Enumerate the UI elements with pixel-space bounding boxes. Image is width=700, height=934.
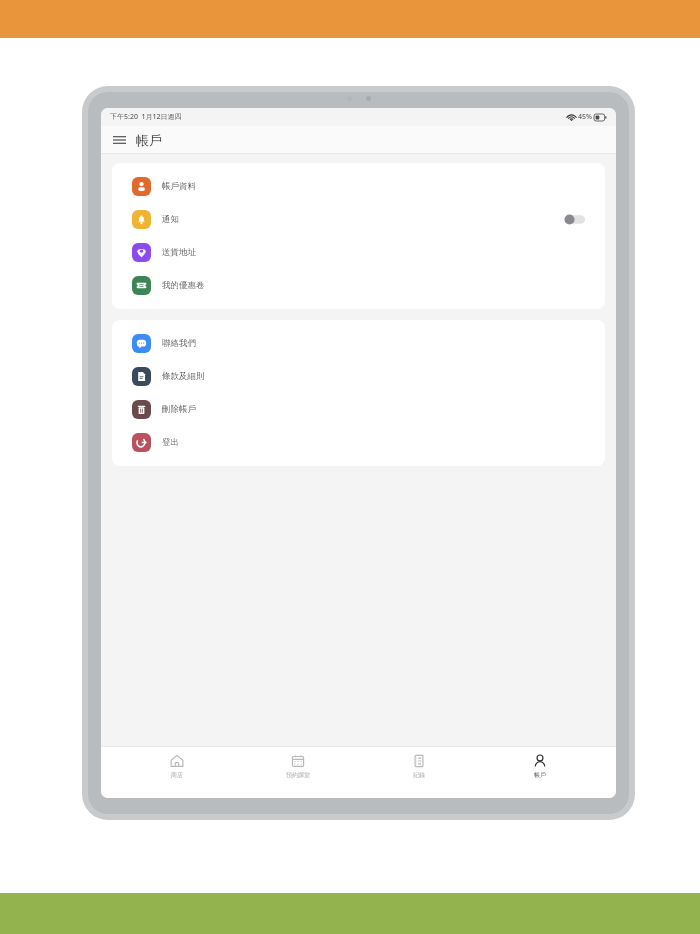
button[interactable]: 商店 [132, 750, 222, 783]
button[interactable]: Menu [109, 130, 129, 150]
button[interactable]: 帳戶資料 [112, 170, 605, 203]
staticText: 通知 [162, 214, 179, 225]
button[interactable]: 預約課堂 [253, 750, 343, 783]
button[interactable]: Notifications toggle [564, 214, 585, 225]
staticText: 送貨地址 [162, 247, 196, 258]
staticText: 我的優惠卷 [162, 280, 205, 291]
staticText: 條款及細則 [162, 371, 205, 382]
staticText: 商店 [171, 771, 183, 779]
staticText: 紀錄 [413, 771, 425, 779]
staticText: 刪除帳戶 [162, 404, 196, 415]
button[interactable]: 通知 [112, 203, 605, 236]
staticText: 聯絡我們 [162, 338, 196, 349]
staticText: 下午5:20 1月12日週四 [110, 112, 182, 122]
button[interactable]: 帳戶 [495, 750, 585, 783]
staticText: 預約課堂 [286, 771, 310, 779]
button[interactable]: 聯絡我們 [112, 327, 605, 360]
button[interactable]: 紀錄 [374, 750, 464, 783]
button[interactable]: 條款及細則 [112, 360, 605, 393]
button[interactable]: 刪除帳戶 [112, 393, 605, 426]
button[interactable]: 送貨地址 [112, 236, 605, 269]
staticText: 登出 [162, 437, 179, 448]
button[interactable]: 我的優惠卷 [112, 269, 605, 302]
button[interactable]: 登出 [112, 426, 605, 459]
staticText: 帳戶資料 [162, 181, 196, 192]
staticText: 帳戶 [136, 132, 162, 148]
staticText: 帳戶 [534, 771, 546, 779]
staticText: 45% [578, 112, 592, 122]
